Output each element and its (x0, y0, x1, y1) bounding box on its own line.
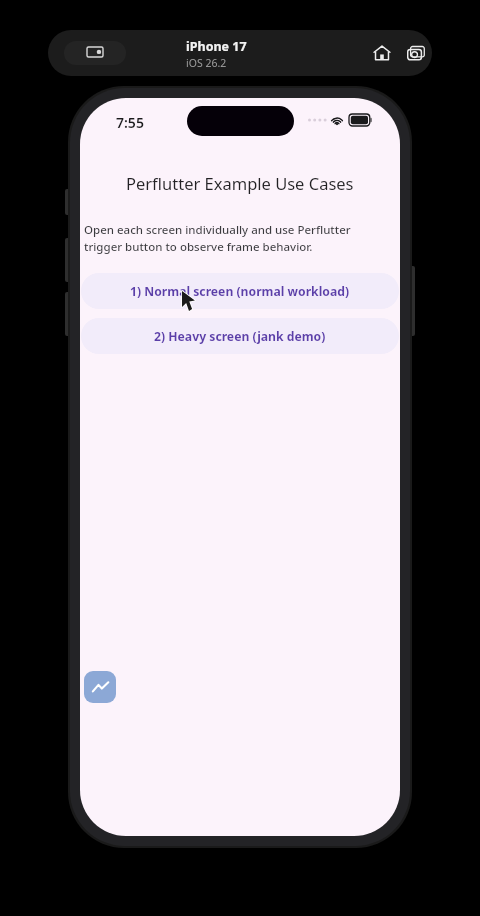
staticText: 7:55 (116, 113, 144, 132)
button[interactable]: Screenshot (404, 41, 428, 65)
staticText: 2) Heavy screen (jank demo) (154, 328, 326, 345)
staticText: iOS 26.2 (186, 56, 227, 70)
button[interactable]: 1) Normal screen (normal workload) (81, 273, 399, 309)
staticText: 1) Normal screen (normal workload) (130, 283, 350, 300)
staticText: Open each screen individually and use Pe… (84, 222, 351, 255)
button[interactable]: Select device (64, 41, 126, 65)
button[interactable]: 2) Heavy screen (jank demo) (81, 318, 399, 354)
staticText: iPhone 17 (186, 38, 247, 55)
staticText: Perflutter Example Use Cases (126, 172, 354, 194)
button[interactable]: Perflutter performance trigger (84, 671, 116, 703)
button[interactable]: Home (370, 41, 394, 65)
